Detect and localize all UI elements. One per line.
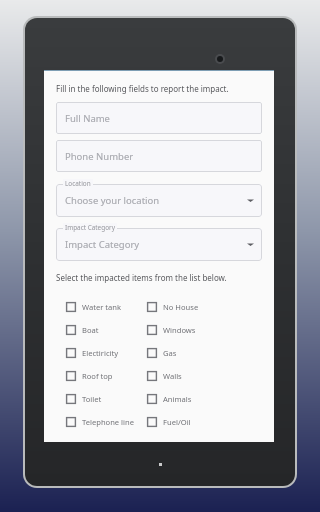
staticText: Impact Category [65,238,140,251]
button[interactable]: Gas [147,348,262,358]
staticText: No House [163,302,199,312]
staticText: Boat [82,325,99,335]
other: Open Location menu [247,197,254,204]
staticText: Gas [163,348,177,358]
button[interactable]: Phone Number [56,140,262,172]
button[interactable]: Roof top [66,371,147,381]
button[interactable]: Walls [147,371,262,381]
button[interactable]: No House [147,302,262,312]
staticText: Impact Category [65,223,115,232]
button[interactable]: Electiricity [66,348,147,358]
staticText: Telephone line [82,417,135,427]
button[interactable]: Boat [66,325,147,335]
staticText: Fuel/Oil [163,417,191,427]
button[interactable]: Animals [147,394,262,404]
button[interactable]: Telephone line [66,417,147,427]
other: Open Impact Category menu [247,241,254,248]
staticText: Toilet [82,394,102,404]
staticText: Full Name [65,112,110,125]
button[interactable]: Full Name [56,102,262,134]
staticText: Roof top [82,371,113,381]
staticText: Walls [163,371,182,381]
staticText: Phone Number [65,150,134,163]
staticText: Animals [163,394,192,404]
staticText: Water tank [82,302,122,312]
staticText: Select the impacted items from the list … [56,272,227,283]
staticText: Fill in the following fields to report t… [56,83,229,94]
staticText: Windows [163,325,196,335]
button[interactable]: Fuel/Oil [147,417,262,427]
button[interactable]: Windows [147,325,262,335]
button[interactable]: Choose your location [56,184,262,217]
staticText: Electiricity [82,348,119,358]
button[interactable]: Water tank [66,302,147,312]
button[interactable]: Impact Category [56,228,262,261]
staticText: Location [65,179,91,188]
staticText: Choose your location [65,194,160,207]
button[interactable]: Toilet [66,394,147,404]
